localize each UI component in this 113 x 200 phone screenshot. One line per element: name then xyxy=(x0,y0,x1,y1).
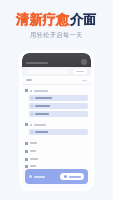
button[interactable] xyxy=(29,129,88,135)
staticText: 介面 xyxy=(70,11,97,27)
button[interactable] xyxy=(25,139,87,147)
button[interactable] xyxy=(73,69,87,74)
button[interactable] xyxy=(25,169,88,184)
button[interactable] xyxy=(25,121,87,128)
button[interactable] xyxy=(29,111,88,117)
staticText: 清新疗愈 xyxy=(16,11,70,27)
button[interactable] xyxy=(60,173,84,180)
button[interactable] xyxy=(25,147,87,155)
button[interactable] xyxy=(25,155,87,163)
button[interactable] xyxy=(29,103,88,109)
button[interactable] xyxy=(25,163,87,169)
button[interactable] xyxy=(29,95,88,101)
staticText: 用轻松开启每一天 xyxy=(30,31,83,39)
button[interactable] xyxy=(25,87,87,94)
button[interactable]: Account xyxy=(81,59,87,65)
